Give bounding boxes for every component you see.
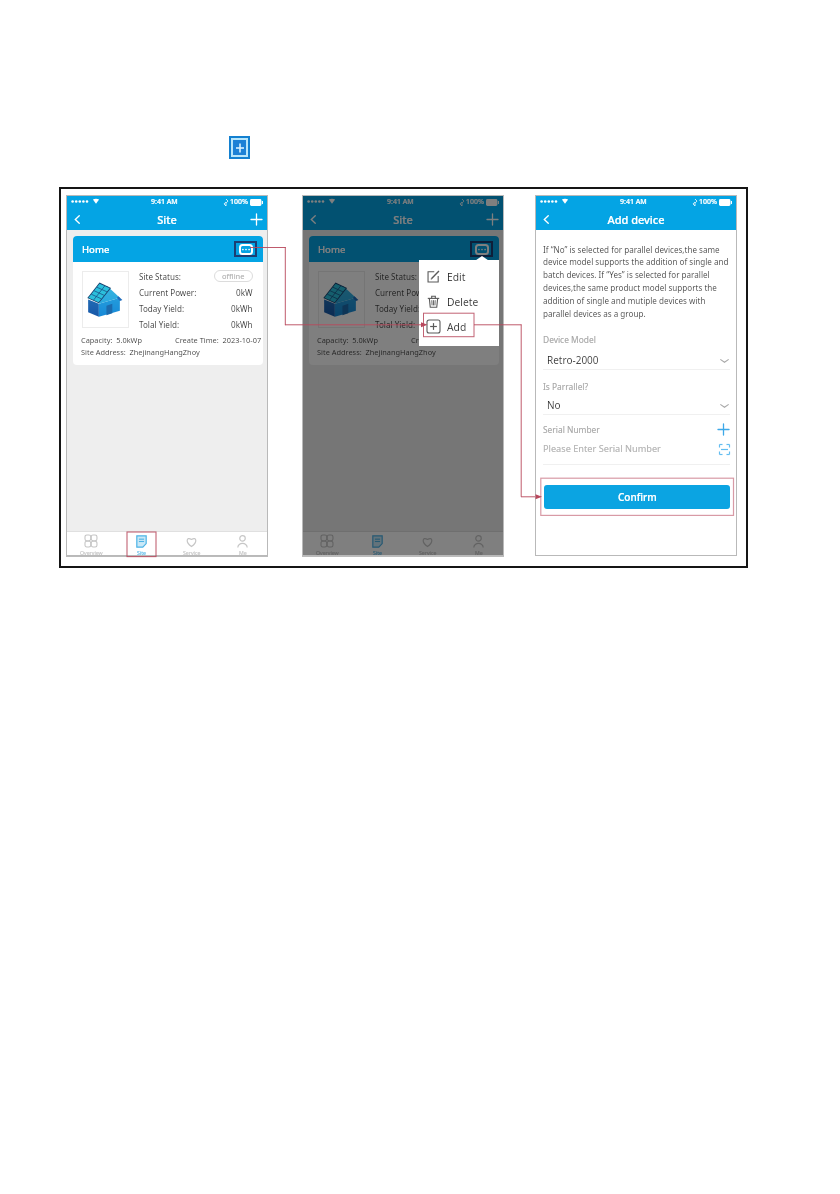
staticText: Me	[239, 549, 247, 556]
staticText: Is Parrallel?	[543, 381, 589, 392]
staticText: Tolal Yield:	[375, 319, 416, 330]
staticText: Add	[447, 320, 467, 334]
staticText: Tolal Yield:	[139, 319, 180, 330]
staticText: 9:41 AM	[151, 197, 178, 207]
staticText: Capacity: 5.0kWp	[317, 335, 378, 345]
staticText: Home	[318, 243, 346, 256]
staticText: Site Address: ZhejinangHangZhoy	[81, 347, 200, 357]
staticText: Site Status:	[375, 271, 417, 282]
button[interactable]: Add site	[245, 208, 268, 230]
staticText: Delete	[447, 295, 479, 309]
staticText: Edit	[447, 270, 466, 284]
staticText: Site Address: ZhejinangHangZhoy	[317, 347, 436, 357]
button[interactable]: Site	[352, 532, 402, 556]
staticText: Me	[475, 549, 483, 556]
button[interactable]: Back	[66, 208, 89, 230]
button[interactable]: Add site	[481, 208, 504, 230]
staticText: Home	[82, 243, 110, 256]
staticText: Site	[137, 549, 146, 556]
button[interactable]: Me	[453, 532, 504, 556]
button[interactable]: Back	[302, 208, 325, 230]
staticText: Site	[89, 212, 245, 227]
button[interactable]: Add	[229, 136, 250, 159]
staticText: No	[547, 398, 561, 412]
staticText: 100%	[699, 197, 717, 207]
staticText: Overview	[316, 549, 339, 556]
button[interactable]: Add serial number	[717, 423, 730, 436]
staticText: If “No” is selected for parallel devices…	[543, 244, 732, 320]
button[interactable]: Site	[116, 532, 166, 556]
staticText: Overview	[80, 549, 103, 556]
staticText: 0kWh	[231, 303, 253, 314]
staticText: Create Time: 2023-10-07	[175, 335, 262, 345]
staticText: Site Status:	[139, 271, 181, 282]
staticText: 100%	[466, 197, 484, 207]
button[interactable]: Back	[535, 208, 558, 230]
staticText: Retro-2000	[547, 353, 599, 367]
staticText: offline	[222, 271, 245, 281]
staticText: Site	[373, 549, 382, 556]
staticText: offline	[458, 271, 481, 281]
staticText: Add device	[558, 212, 714, 227]
staticText: 100%	[230, 197, 248, 207]
staticText: Current Power:	[375, 287, 433, 298]
button[interactable]: Service	[166, 532, 217, 556]
staticText: Confirm	[618, 490, 657, 504]
staticText: Today Yield:	[375, 303, 421, 314]
button[interactable]: Overview	[302, 532, 352, 556]
button[interactable]: Confirm	[544, 485, 730, 509]
button[interactable]: Me	[217, 532, 268, 556]
staticText: Service	[419, 549, 437, 556]
button[interactable]: More options	[234, 241, 257, 257]
staticText: Please Enter Serial Number	[543, 442, 661, 455]
staticText: Capacity: 5.0kWp	[81, 335, 142, 345]
button[interactable]: Service	[402, 532, 453, 556]
button[interactable]: Edit	[419, 264, 499, 289]
button[interactable]: More options	[470, 241, 493, 257]
button[interactable]: Overview	[66, 532, 116, 556]
button[interactable]: Delete	[419, 289, 499, 314]
staticText: 0kW	[236, 287, 253, 298]
staticText: Serial Number	[543, 424, 600, 435]
staticText: Current Power:	[139, 287, 197, 298]
staticText: Device Model	[543, 334, 596, 345]
staticText: Site	[325, 212, 481, 227]
staticText: Today Yield:	[139, 303, 185, 314]
staticText: 0kWh	[467, 303, 489, 314]
button[interactable]: Add	[419, 314, 499, 339]
staticText: 0kWh	[467, 319, 489, 330]
staticText: 9:41 AM	[387, 197, 414, 207]
staticText: Service	[183, 549, 201, 556]
button[interactable]: Scan serial number	[718, 443, 730, 455]
staticText: 0kWh	[231, 319, 253, 330]
staticText: 9:41 AM	[620, 197, 647, 207]
staticText: Create Time: 2023-10-07	[411, 335, 498, 345]
